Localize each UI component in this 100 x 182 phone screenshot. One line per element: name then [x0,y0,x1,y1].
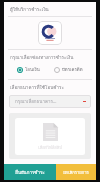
button[interactable]: Payment provider logo [38,21,62,45]
staticText: บัตรเครดิต [62,66,83,73]
staticText: เลือกไฟล์สลิป [38,144,62,150]
button[interactable]: บัตรเครดิต [53,65,84,74]
button[interactable]: โอนเงิน [16,65,41,74]
button[interactable]: กรุณาเลือกธนาคาร... [9,95,91,108]
button[interactable]: ยกเลิกรายการ [56,164,96,180]
staticText: โอนเงิน [25,66,40,73]
staticText: เลือกธนาคารที่ใช้โอนชำระ [10,84,64,91]
staticText: ยืนยันการชำระ [15,169,45,176]
button[interactable]: ยืนยันการชำระ [4,164,56,180]
staticText: กรุณาเลือกช่องทางการชำระเงิน [10,54,74,61]
staticText: กรุณาเลือกธนาคาร... [15,98,57,105]
staticText: ยกเลิกรายการ [63,169,89,176]
button[interactable]: Upload payment slip [15,118,85,155]
staticText: ผู้ให้บริการชำระเงิน [10,6,49,13]
